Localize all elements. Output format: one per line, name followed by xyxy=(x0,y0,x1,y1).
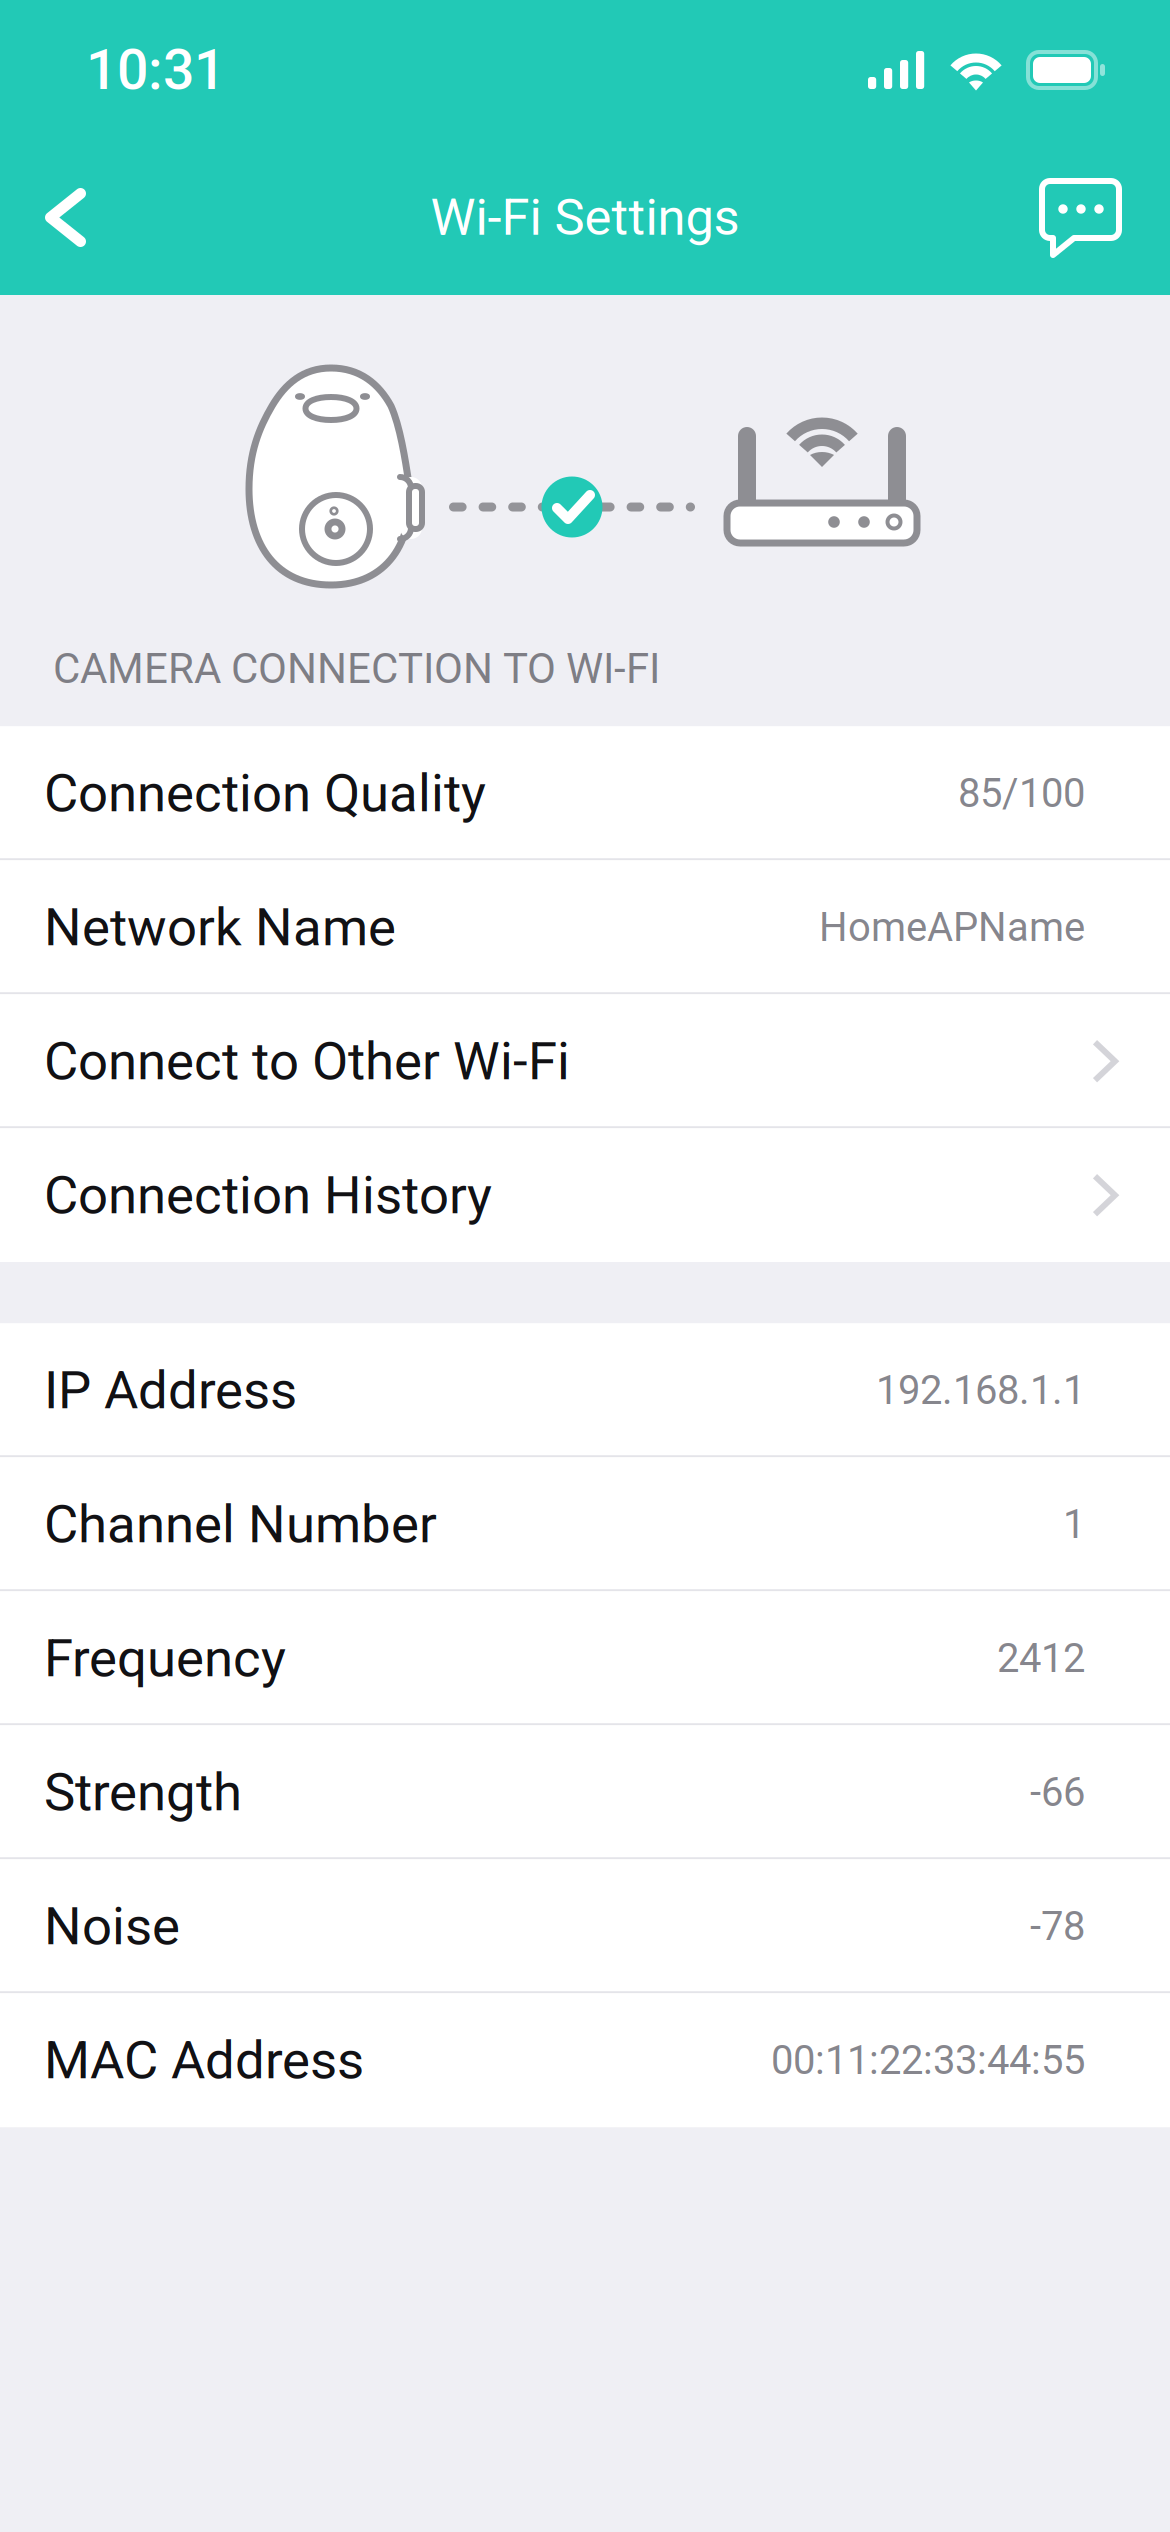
staticText: 192.168.1.1 xyxy=(876,1367,1085,1414)
button[interactable]: Back xyxy=(0,140,120,295)
button[interactable]: Connection History xyxy=(0,1128,1170,1262)
staticText: Frequency xyxy=(44,1627,286,1689)
staticText: Noise xyxy=(44,1895,180,1957)
staticText: Connection History xyxy=(44,1164,492,1226)
staticText: 00:11:22:33:44:55 xyxy=(771,2037,1085,2084)
staticText: 85/100 xyxy=(958,770,1085,817)
staticText: 10:31 xyxy=(86,38,225,102)
staticText: Network Name xyxy=(44,896,396,958)
staticText: Strength xyxy=(44,1761,242,1823)
staticText: 2412 xyxy=(997,1635,1085,1682)
staticText: 1 xyxy=(1063,1501,1085,1548)
staticText: Connect to Other Wi-Fi xyxy=(44,1030,570,1092)
staticText: MAC Address xyxy=(44,2029,364,2091)
button[interactable]: Connect to Other Wi-Fi xyxy=(0,994,1170,1128)
staticText: Connection Quality xyxy=(44,762,486,824)
staticText: -66 xyxy=(1030,1769,1085,1816)
staticText: Channel Number xyxy=(44,1493,437,1555)
staticText: -78 xyxy=(1030,1903,1085,1950)
staticText: Wi-Fi Settings xyxy=(430,188,739,247)
staticText: IP Address xyxy=(44,1359,297,1421)
staticText: HomeAPName xyxy=(819,904,1085,951)
button[interactable]: Messages xyxy=(1009,140,1170,295)
staticText: CAMERA CONNECTION TO WI-FI xyxy=(53,644,660,693)
